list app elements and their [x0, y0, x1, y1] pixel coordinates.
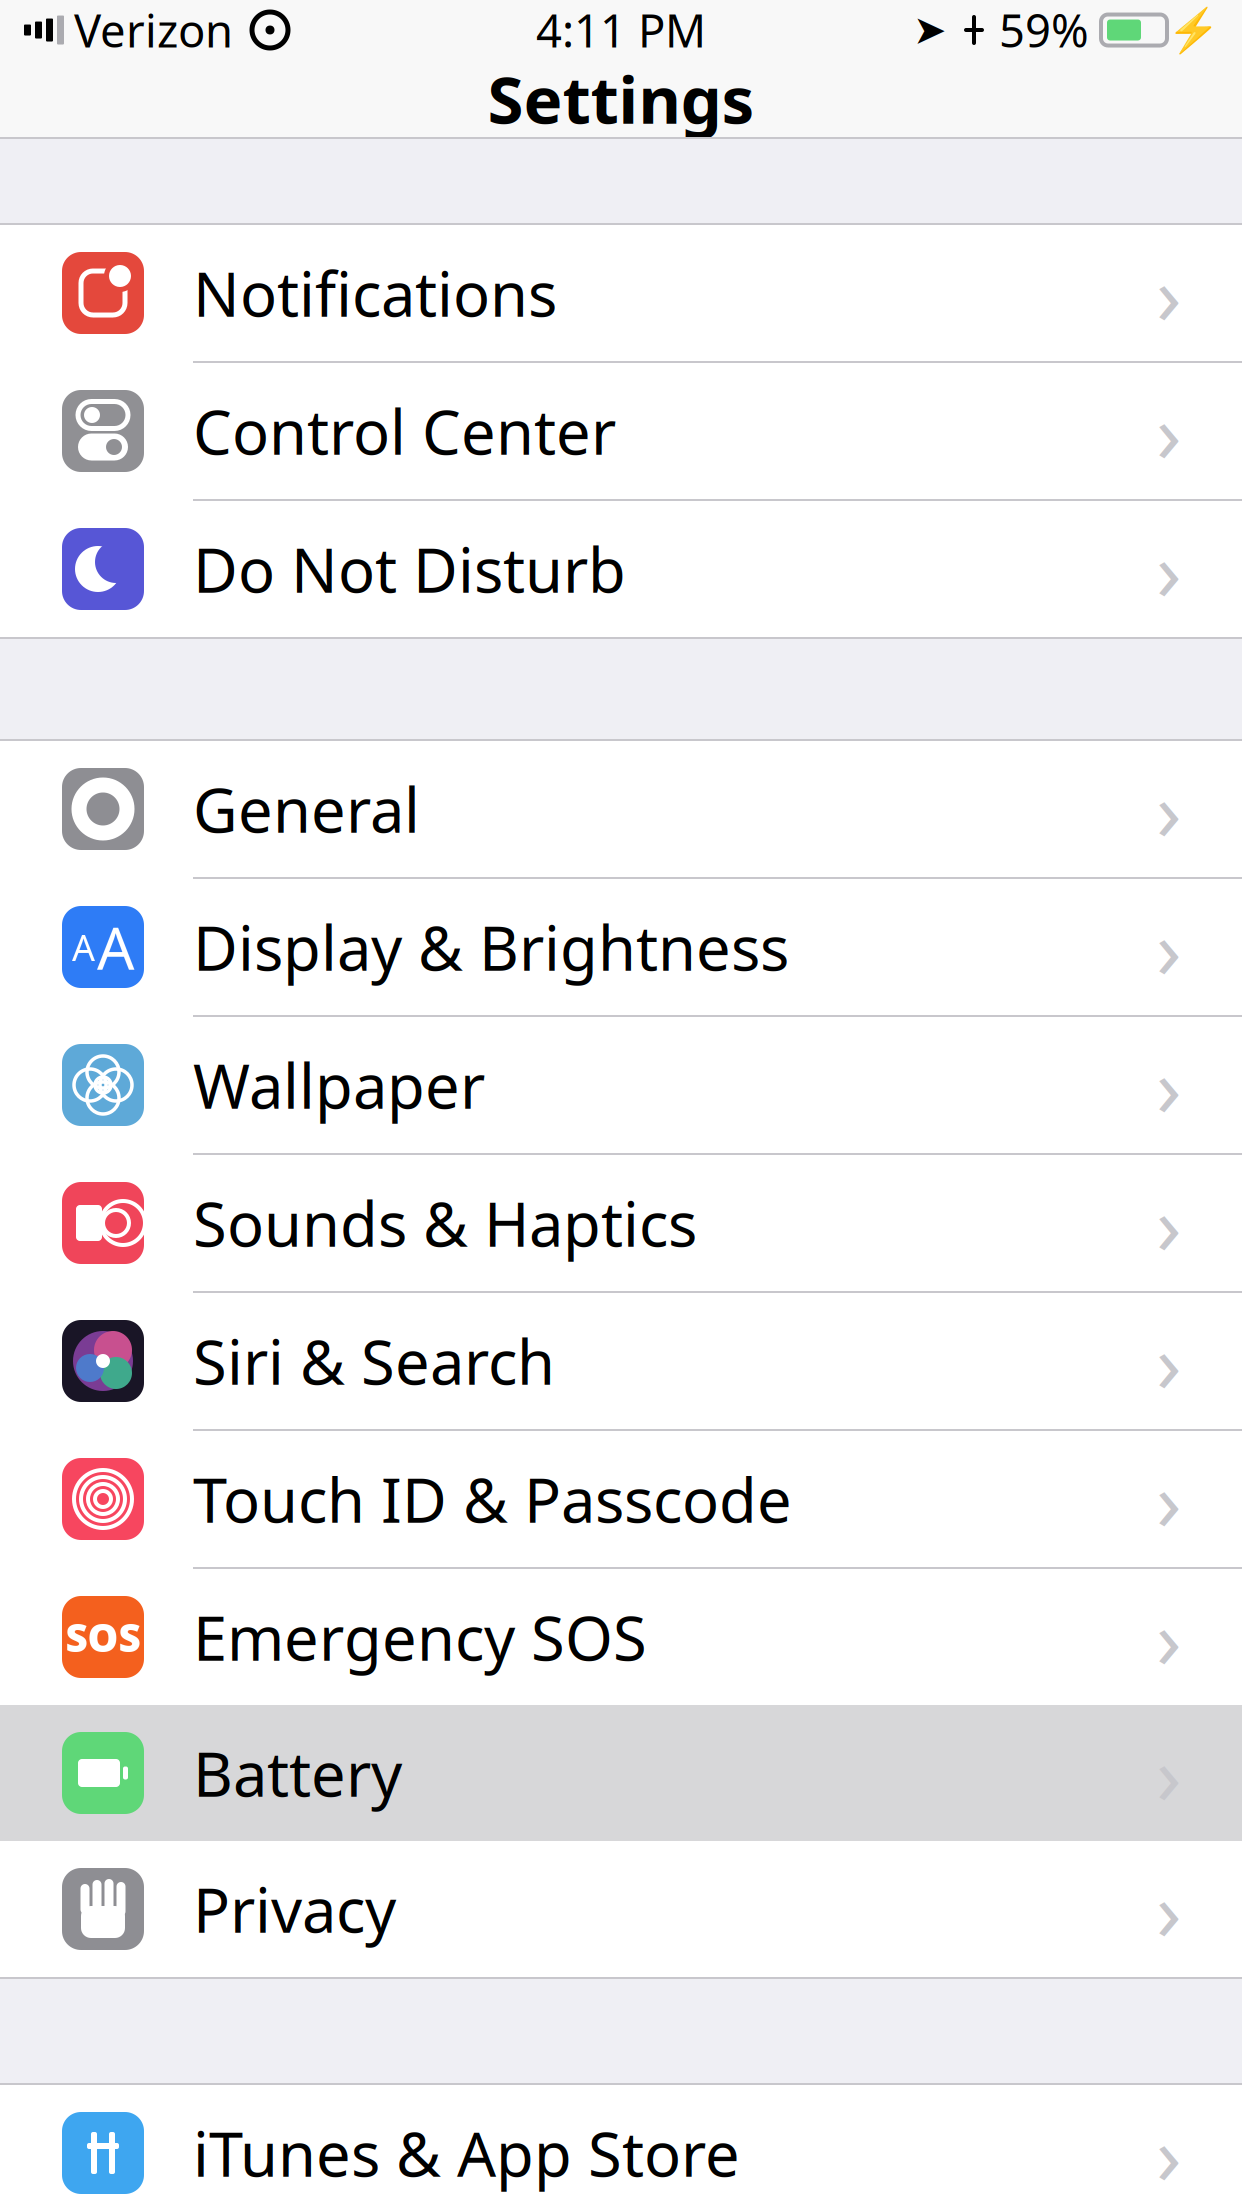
- button[interactable]: Privacy: [0, 1841, 1242, 1977]
- staticText: ›: [1156, 1582, 1182, 1692]
- button[interactable]: Control Center: [0, 363, 1242, 501]
- staticText: A: [97, 908, 134, 986]
- button[interactable]: iTunes & App Store: [0, 2085, 1242, 2208]
- button[interactable]: Touch ID & Passcode: [0, 1431, 1242, 1569]
- staticText: ➤: [913, 7, 947, 53]
- button[interactable]: SOS: [0, 1569, 1242, 1705]
- button[interactable]: Siri & Search: [0, 1293, 1242, 1431]
- button[interactable]: Sounds & Haptics: [0, 1155, 1242, 1293]
- staticText: Siri & Search: [193, 1320, 555, 1402]
- button[interactable]: Battery: [0, 1705, 1242, 1841]
- staticText: ›: [1156, 1718, 1182, 1828]
- staticText: ›: [1156, 1306, 1182, 1416]
- staticText: Emergency SOS: [193, 1596, 647, 1678]
- staticText: Notifications: [193, 252, 557, 334]
- staticText: iTunes & App Store: [193, 2112, 740, 2194]
- button[interactable]: General: [0, 741, 1242, 879]
- staticText: ›: [1156, 1168, 1182, 1278]
- staticText: ⚡: [1167, 6, 1220, 54]
- staticText: ›: [1156, 754, 1182, 864]
- staticText: Wallpaper: [193, 1044, 485, 1126]
- staticText: Settings: [487, 55, 754, 142]
- staticText: Do Not Disturb: [193, 528, 626, 610]
- staticText: ›: [1156, 1030, 1182, 1140]
- staticText: SOS: [65, 1611, 140, 1663]
- staticText: General: [193, 768, 420, 850]
- button[interactable]: Notifications: [0, 225, 1242, 363]
- button[interactable]: Do Not Disturb: [0, 501, 1242, 637]
- staticText: ›: [1156, 1444, 1182, 1554]
- staticText: ›: [1156, 892, 1182, 1002]
- staticText: Battery: [193, 1732, 402, 1814]
- staticText: 59%: [999, 0, 1089, 60]
- staticText: ›: [1156, 2098, 1182, 2208]
- staticText: ›: [1156, 1854, 1182, 1964]
- button[interactable]: Wallpaper: [0, 1017, 1242, 1155]
- staticText: ›: [1156, 514, 1182, 624]
- staticText: Display & Brightness: [193, 906, 789, 988]
- staticText: Touch ID & Passcode: [193, 1458, 792, 1540]
- staticText: 4:11 PM: [536, 0, 706, 60]
- staticText: ›: [1156, 238, 1182, 348]
- staticText: Sounds & Haptics: [193, 1182, 697, 1264]
- staticText: Privacy: [193, 1868, 396, 1950]
- staticText: A: [72, 923, 95, 971]
- staticText: Verizon: [74, 0, 233, 60]
- button[interactable]: A: [0, 879, 1242, 1017]
- staticText: Control Center: [193, 390, 616, 472]
- staticText: ›: [1156, 376, 1182, 486]
